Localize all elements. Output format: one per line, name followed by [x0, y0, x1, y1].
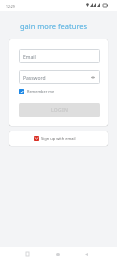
- button[interactable]: Sign up with email: [9, 131, 108, 146]
- staticText: Email: [23, 54, 36, 61]
- staticText: Remember me: [27, 89, 55, 94]
- other: Show password: [91, 76, 95, 79]
- staticText: LOGIN: [51, 107, 69, 114]
- staticText: Password: [23, 75, 46, 82]
- button[interactable]: Remember me: [19, 89, 55, 94]
- button[interactable]: Password: [19, 70, 100, 84]
- staticText: gain more features: [20, 21, 88, 31]
- button[interactable]: Recents: [20, 247, 34, 261]
- button[interactable]: Email: [19, 49, 100, 63]
- staticText: Sign up with email: [41, 136, 76, 141]
- button[interactable]: Back: [79, 247, 93, 261]
- button[interactable]: Home: [51, 247, 65, 261]
- staticText: 12:29: [6, 4, 15, 9]
